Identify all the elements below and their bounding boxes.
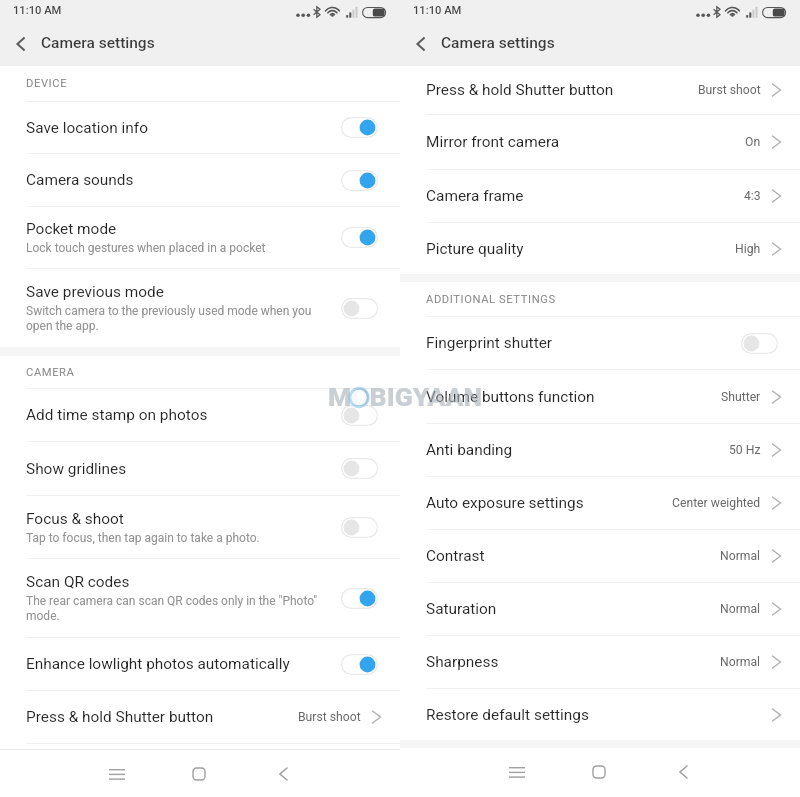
staticText: Normal (720, 549, 761, 563)
staticText: The rear camera can scan QR codes only i… (26, 594, 333, 623)
staticText: Focus & shoot (26, 510, 124, 528)
button[interactable]: Fingerprint shutter (400, 317, 800, 369)
staticText: Press & hold Shutter button (26, 708, 298, 726)
button[interactable]: Show gridlines (0, 442, 400, 495)
button[interactable]: Camera frame (400, 170, 800, 222)
button[interactable]: Back (407, 30, 435, 58)
button[interactable]: Off (341, 298, 378, 319)
button[interactable]: Scan QR codes (0, 559, 400, 637)
button[interactable]: Auto exposure settings (400, 477, 800, 529)
staticText: Pocket mode (26, 220, 117, 238)
button[interactable]: Pocket mode (0, 207, 400, 268)
staticText: Shutter (721, 390, 761, 404)
staticText: Contrast (426, 547, 720, 565)
button[interactable]: Mirror front camera (400, 115, 800, 169)
staticText: Anti banding (426, 441, 729, 459)
staticText: DEVICE (26, 77, 68, 90)
button[interactable]: Sharpness (400, 636, 800, 688)
button[interactable]: Focus & shoot (0, 496, 400, 558)
staticText: High (735, 242, 761, 256)
staticText: Mirror front camera (426, 133, 745, 151)
button[interactable]: On (341, 117, 378, 138)
button[interactable]: Save previous mode (0, 269, 400, 347)
staticText: Normal (720, 655, 761, 669)
button[interactable]: On (341, 654, 378, 675)
staticText: MOBIGYAAN (328, 381, 483, 411)
button[interactable]: On (341, 170, 378, 191)
staticText: Add time stamp on photos (26, 406, 208, 424)
staticText: Auto exposure settings (426, 494, 672, 512)
staticText: Show gridlines (26, 460, 127, 478)
button[interactable]: Off (341, 458, 378, 479)
staticText: Normal (720, 602, 761, 616)
button[interactable]: Off (741, 333, 778, 354)
staticText: Lock touch gestures when placed in a poc… (26, 241, 266, 255)
button[interactable]: Off (341, 517, 378, 538)
staticText: Tap to focus, then tap again to take a p… (26, 531, 260, 545)
staticText: Enhance lowlight photos automatically (26, 655, 290, 673)
staticText: Restore default settings (426, 706, 761, 724)
staticText: Picture quality (426, 240, 735, 258)
button[interactable]: Saturation (400, 583, 800, 635)
button[interactable]: Press & hold Shutter button (0, 691, 400, 743)
staticText: Center weighted (672, 496, 761, 510)
button[interactable]: Home (575, 752, 623, 792)
button[interactable]: Add time stamp on photos (0, 389, 400, 441)
button[interactable]: Off (341, 405, 378, 426)
staticText: Camera sounds (26, 171, 134, 189)
button[interactable]: Back (7, 30, 35, 58)
button[interactable]: Restore default settings (400, 689, 800, 740)
button[interactable]: On (341, 588, 378, 609)
button[interactable]: Volume buttons function (400, 370, 800, 423)
button[interactable]: On (341, 227, 378, 248)
staticText: Burst shoot (298, 710, 361, 724)
staticText: 11:10 AM (13, 4, 62, 17)
button[interactable]: Anti banding (400, 424, 800, 476)
staticText: Fingerprint shutter (426, 334, 553, 352)
staticText: Camera settings (441, 34, 555, 52)
button[interactable]: Recent apps (93, 754, 141, 794)
button[interactable]: Contrast (400, 530, 800, 582)
button[interactable]: Home (175, 754, 223, 794)
staticText: Save location info (26, 119, 148, 137)
button[interactable]: Save location info (0, 102, 400, 153)
staticText: Save previous mode (26, 283, 164, 301)
button[interactable]: Camera sounds (0, 154, 400, 206)
staticText: Saturation (426, 600, 720, 618)
staticText: 4:3 (744, 189, 761, 203)
staticText: On (745, 135, 761, 149)
button[interactable]: Enhance lowlight photos automatically (0, 638, 400, 690)
button[interactable]: Press & hold Shutter button (400, 66, 800, 114)
staticText: Camera settings (41, 34, 155, 52)
button[interactable]: Picture quality (400, 223, 800, 274)
button[interactable]: Back (259, 754, 307, 794)
staticText: 11:10 AM (413, 4, 462, 17)
staticText: Switch camera to the previously used mod… (26, 304, 333, 333)
button[interactable]: Back (659, 752, 707, 792)
staticText: 50 Hz (729, 443, 761, 457)
staticText: Scan QR codes (26, 573, 130, 591)
staticText: Camera frame (426, 187, 744, 205)
button[interactable]: Recent apps (493, 752, 541, 792)
staticText: Volume buttons function (426, 388, 721, 406)
staticText: Burst shoot (698, 83, 761, 97)
staticText: Press & hold Shutter button (426, 81, 698, 99)
staticText: ADDITIONAL SETTINGS (426, 293, 556, 306)
staticText: Sharpness (426, 653, 720, 671)
staticText: CAMERA (26, 366, 75, 379)
